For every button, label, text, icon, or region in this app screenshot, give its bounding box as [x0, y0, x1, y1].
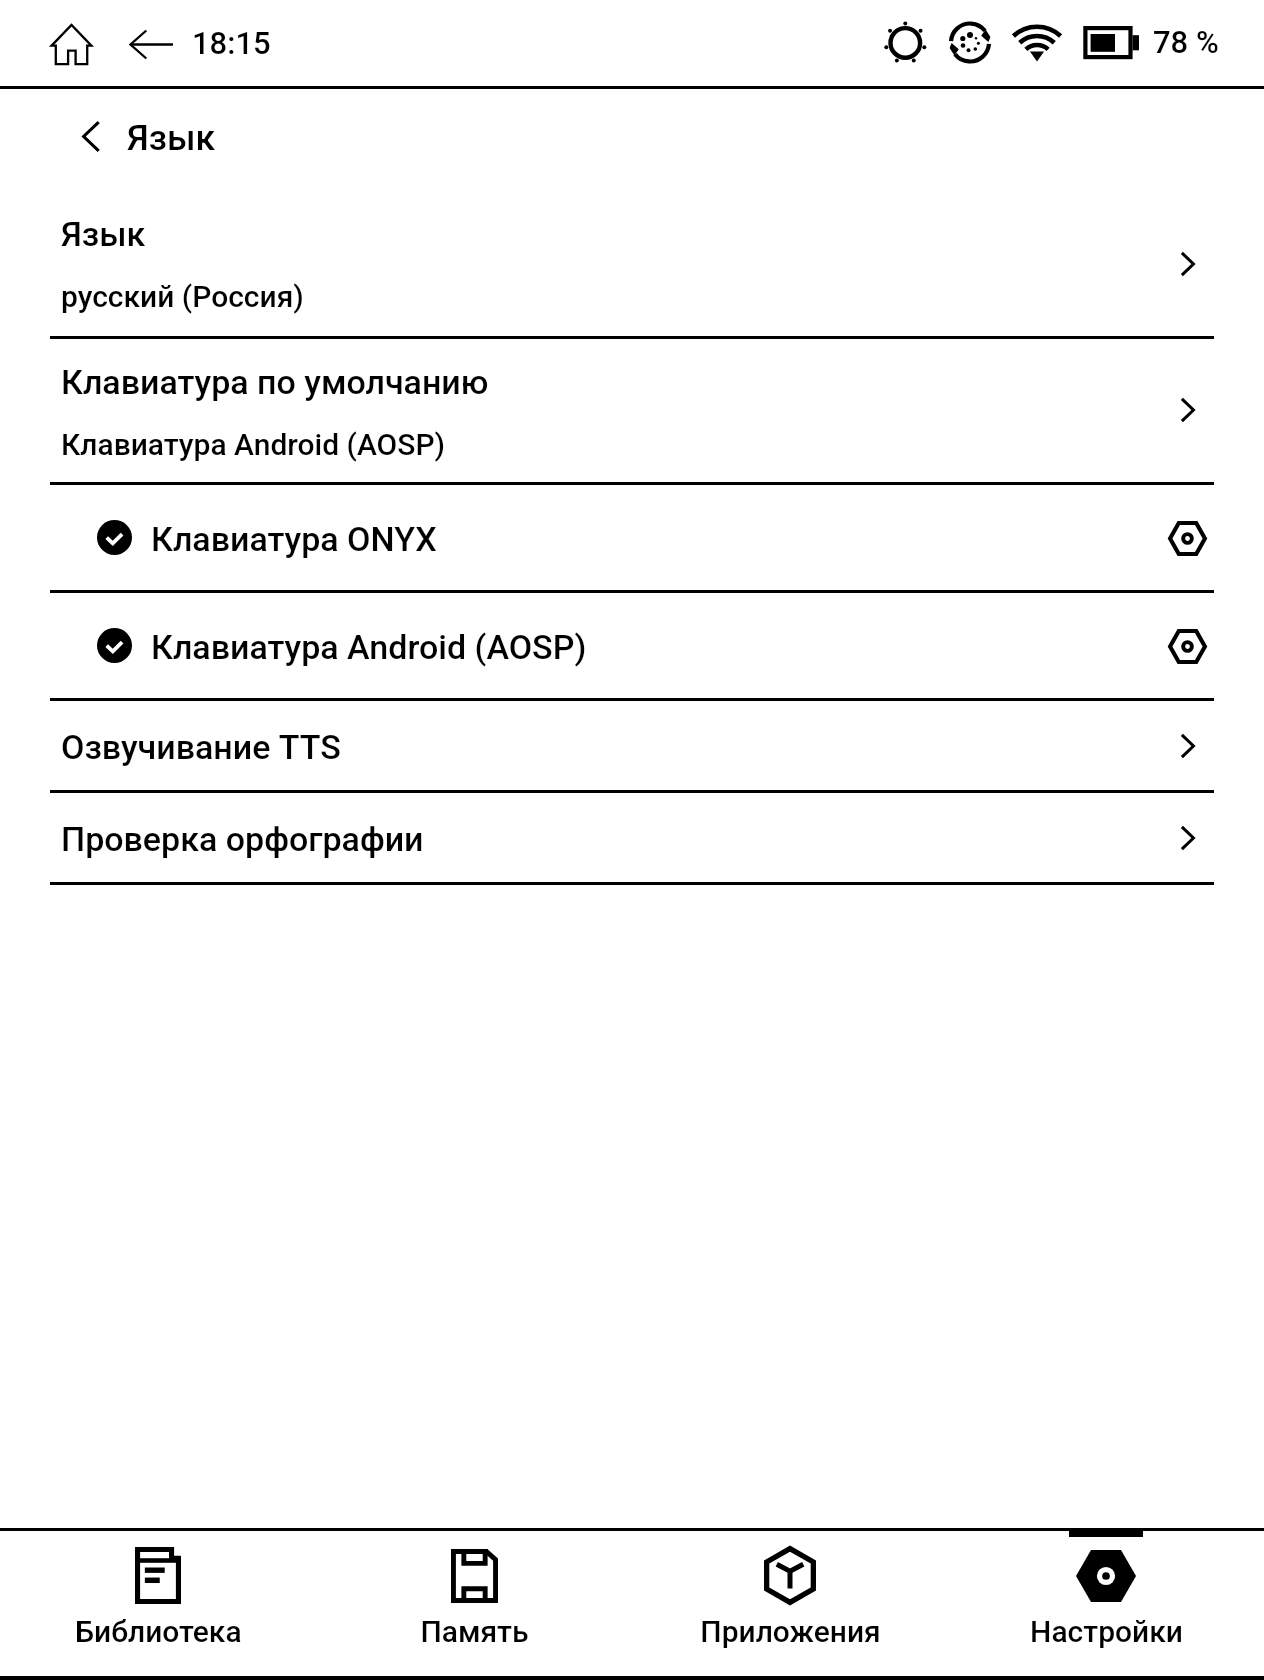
staticText: русский (Россия) [61, 279, 304, 314]
staticText: Язык [127, 117, 216, 159]
staticText: Клавиатура ONYX [151, 519, 437, 559]
staticText: Проверка орфографии [61, 819, 424, 859]
button[interactable]: Озвучивание TTS [0, 700, 1264, 792]
staticText: Озвучивание TTS [61, 727, 341, 767]
button[interactable]: Клавиатура Android (AOSP) [0, 592, 1264, 700]
staticText: 18:15 [192, 25, 271, 61]
button[interactable]: Wi-Fi [1006, 12, 1067, 74]
button[interactable]: Память [316, 1531, 632, 1676]
button[interactable]: Библиотека [0, 1531, 316, 1676]
button[interactable]: Проверка орфографии [0, 792, 1264, 884]
staticText: Настройки [1030, 1614, 1183, 1649]
button[interactable]: Приложения [632, 1531, 948, 1676]
staticText: 78 % [1153, 24, 1219, 60]
staticText: Клавиатура Android (AOSP) [61, 427, 446, 462]
staticText: Клавиатура по умолчанию [61, 362, 489, 402]
button[interactable]: Navigate up [58, 104, 122, 168]
staticText: Приложения [700, 1614, 881, 1649]
button[interactable]: Настройки [948, 1531, 1264, 1676]
button[interactable]: Home [37, 10, 105, 78]
button[interactable]: Back [117, 10, 185, 78]
button[interactable]: Клавиатура ONYX [0, 484, 1264, 592]
button[interactable]: Keyboard settings [1158, 619, 1216, 673]
button[interactable]: Refresh screen [940, 12, 1001, 74]
staticText: Клавиатура Android (AOSP) [151, 627, 587, 667]
button[interactable]: Front light [875, 12, 936, 74]
staticText: Память [420, 1614, 529, 1649]
button[interactable]: Keyboard settings [1158, 511, 1216, 565]
button[interactable]: Battery [1077, 12, 1145, 74]
button[interactable]: Клавиатура по умолчанию [0, 337, 1264, 484]
button[interactable]: Язык [0, 190, 1264, 337]
staticText: Библиотека [75, 1614, 242, 1649]
staticText: Язык [61, 214, 146, 254]
